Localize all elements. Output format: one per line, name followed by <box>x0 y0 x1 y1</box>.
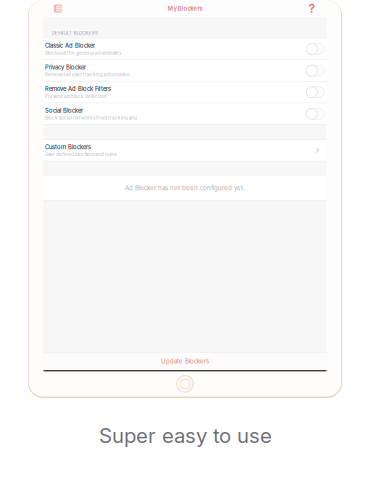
staticText: Custom Blockers <box>45 144 91 151</box>
staticText: User defined blockers and rules. <box>45 152 117 157</box>
button[interactable]: Remove Ad Block Filters <box>43 82 326 103</box>
staticText: Block social networks from tracking you <box>45 115 137 121</box>
staticText: Prevent ad block detection <box>45 93 107 99</box>
staticText: Super easy to use <box>99 423 272 448</box>
staticText: My Blockers <box>167 5 202 12</box>
staticText: Classic Ad Blocker <box>45 42 95 49</box>
staticText: Ad Blocker has not been configured yet. <box>125 184 245 192</box>
staticText: Social Blocker <box>45 107 83 114</box>
button[interactable]: Classic Ad Blocker <box>43 38 326 59</box>
button[interactable]: Help <box>303 0 320 17</box>
staticText: Update Blockers <box>161 358 209 365</box>
staticText: DEFAULT BLOCKERS <box>51 30 98 36</box>
button[interactable]: Custom Blockers <box>43 140 326 161</box>
button[interactable]: Update Blockers <box>43 353 326 370</box>
button[interactable]: Privacy Blocker <box>43 60 326 81</box>
staticText: Privacy Blocker <box>45 64 86 71</box>
staticText: Removes all user tracking informaiton <box>45 72 130 77</box>
button[interactable]: Social Blocker <box>43 103 326 124</box>
staticText: Remove Ad Block Filters <box>45 85 111 92</box>
staticText: ? <box>308 1 315 16</box>
button[interactable]: Blocker list <box>49 0 66 17</box>
staticText: Blocks all the general ad websites <box>45 50 121 56</box>
